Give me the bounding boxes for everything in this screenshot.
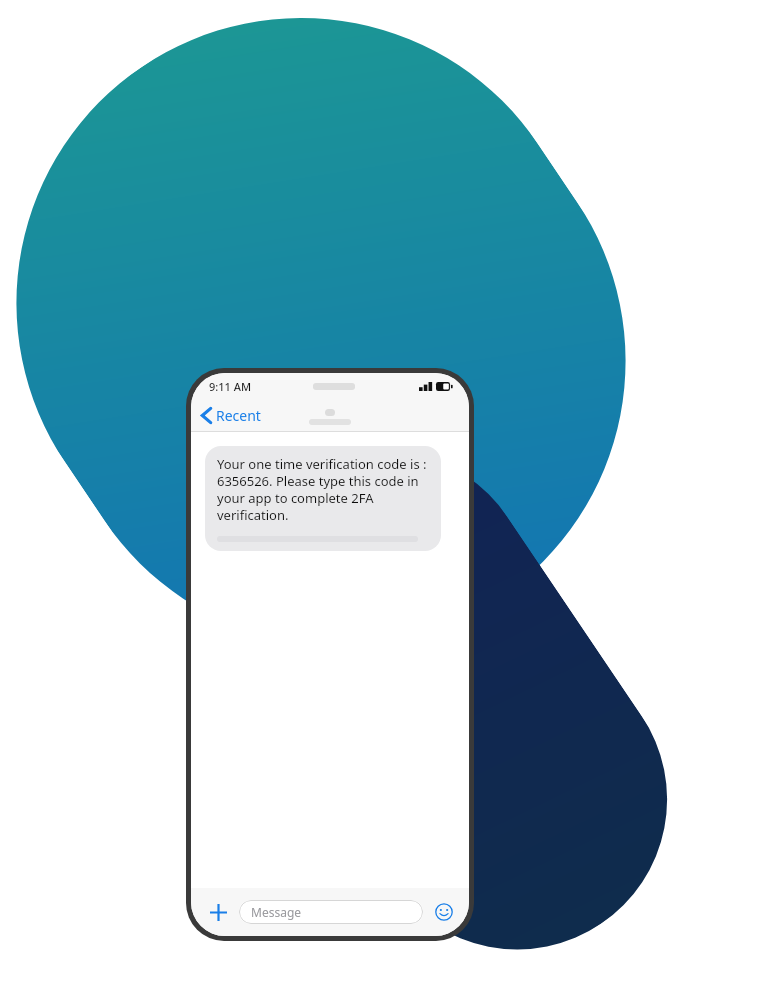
button[interactable]: Message — [239, 900, 423, 924]
staticText: Your one time verification code is : 635… — [217, 455, 429, 524]
staticText: Recent — [216, 406, 261, 425]
button[interactable]: Recent — [191, 402, 269, 429]
staticText: Message — [251, 904, 302, 920]
button[interactable]: Your one time verification code is : 635… — [205, 446, 441, 551]
button[interactable]: Emoji — [431, 899, 457, 925]
button[interactable]: Add attachment — [203, 897, 233, 927]
staticText: 9:11 AM — [209, 379, 252, 394]
